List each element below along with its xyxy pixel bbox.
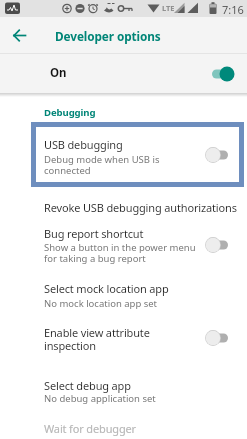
- staticText: Enable view attribute: [44, 325, 150, 340]
- button[interactable]: Revoke USB debugging authorizations: [0, 192, 247, 222]
- button[interactable]: Wait for debugger: [0, 411, 247, 439]
- staticText: Revoke USB debugging authorizations: [44, 200, 237, 215]
- staticText: connected: [44, 164, 91, 177]
- button[interactable]: Bug report shortcut: [0, 222, 247, 272]
- staticText: inspection: [44, 338, 96, 353]
- staticText: Wait for debugger: [44, 421, 136, 436]
- staticText: USB debugging: [44, 137, 123, 152]
- staticText: Developer options: [55, 28, 161, 44]
- staticText: Debugging: [44, 106, 96, 119]
- staticText: 7:16: [222, 2, 244, 17]
- staticText: No debug application set: [44, 392, 156, 405]
- staticText: Show a button in the power menu: [44, 241, 196, 254]
- button[interactable]: On: [0, 53, 247, 93]
- button[interactable]: Select mock location app: [0, 272, 247, 318]
- staticText: No mock location app set: [44, 297, 158, 310]
- staticText: LTE: [162, 3, 175, 13]
- staticText: Select mock location app: [44, 281, 169, 296]
- button[interactable]: [4, 23, 34, 49]
- staticText: for taking a bug report: [44, 252, 146, 265]
- staticText: Bug report shortcut: [44, 226, 144, 241]
- staticText: Debug mode when USB is: [44, 153, 160, 166]
- button[interactable]: Enable view attribute: [0, 318, 247, 363]
- button[interactable]: Select debug app: [0, 363, 247, 411]
- button[interactable]: USB debugging: [36, 127, 239, 182]
- staticText: On: [50, 65, 67, 81]
- staticText: Select debug app: [44, 378, 131, 393]
